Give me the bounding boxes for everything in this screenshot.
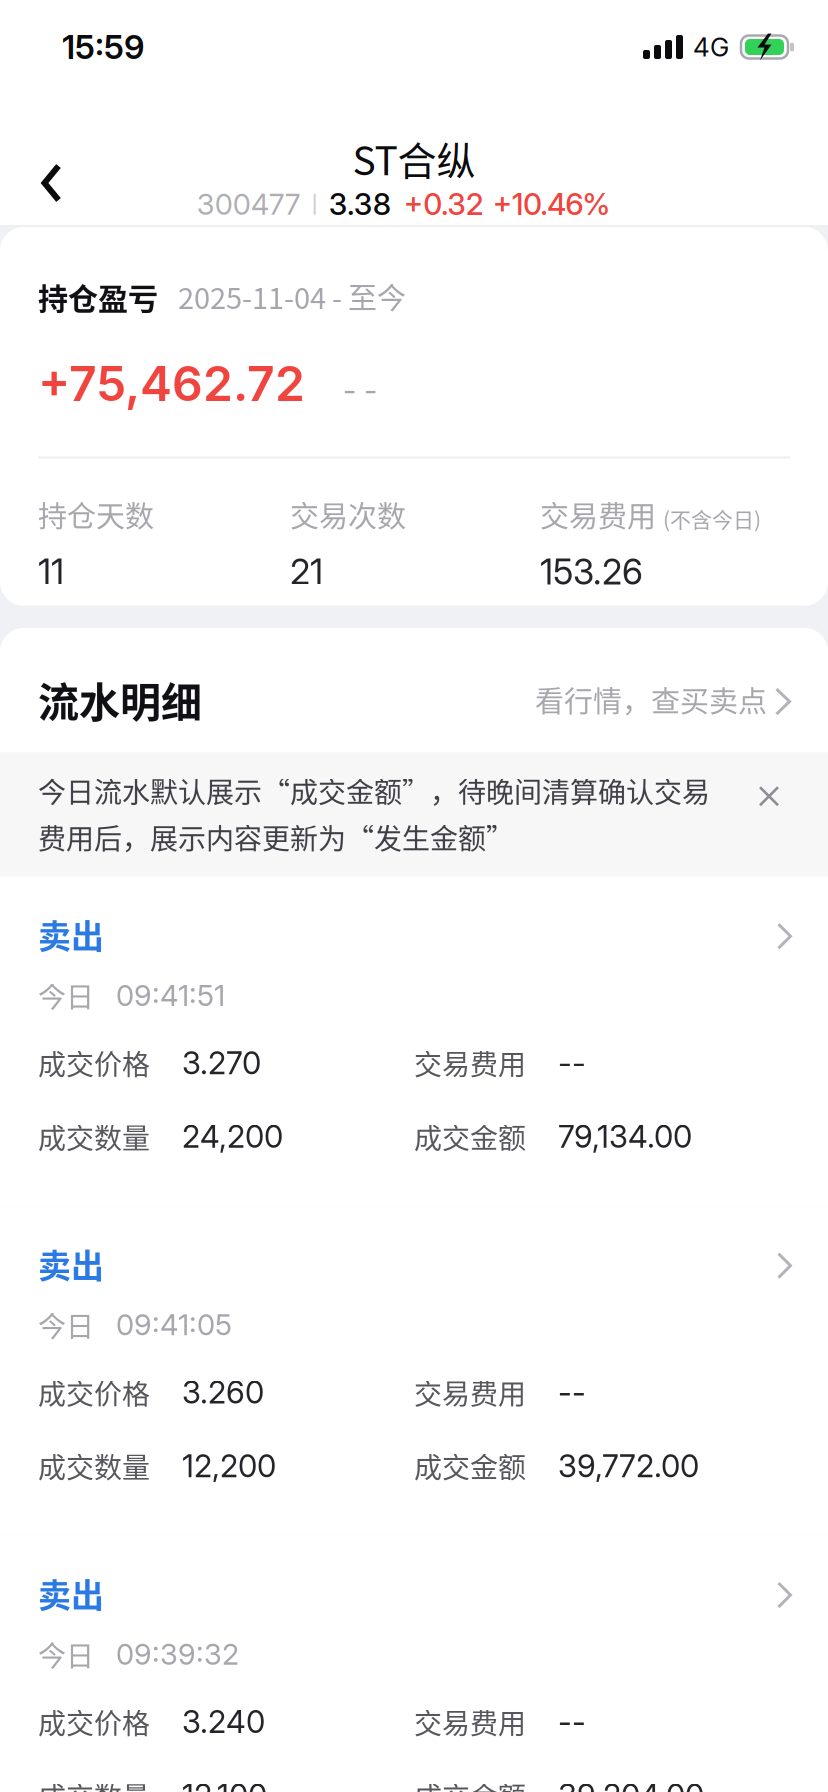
staticText: 卖出 bbox=[38, 1240, 104, 1287]
staticText: 300477 bbox=[197, 187, 301, 222]
staticText: 交易费用 bbox=[414, 1043, 526, 1083]
staticText: 今日 bbox=[38, 975, 94, 1016]
staticText: 成交数量 bbox=[38, 1775, 150, 1792]
staticText: 成交数量 bbox=[38, 1116, 150, 1157]
staticText: 4G bbox=[693, 31, 729, 63]
staticText: 3.38 bbox=[329, 186, 391, 222]
staticText: 持仓天数 bbox=[38, 493, 154, 535]
button[interactable]: 卖出 bbox=[0, 1535, 828, 1792]
staticText: 79,134.00 bbox=[558, 1118, 692, 1155]
button[interactable]: Close bbox=[736, 763, 802, 829]
staticText: 09:41:51 bbox=[116, 978, 225, 1013]
staticText: 09:39:32 bbox=[116, 1637, 239, 1672]
staticText: 39,204.00 bbox=[558, 1776, 704, 1792]
staticText: 成交价格 bbox=[38, 1043, 150, 1083]
staticText: 3.260 bbox=[182, 1374, 264, 1411]
staticText: +75,462.72 bbox=[38, 354, 305, 412]
staticText: 24,200 bbox=[182, 1118, 283, 1155]
staticText: 成交金额 bbox=[414, 1116, 526, 1157]
staticText: 今日流水默认展示“成交金额”，待晚间清算确认交易 bbox=[38, 770, 710, 811]
staticText: 卖出 bbox=[38, 1569, 104, 1617]
staticText: 09:41:05 bbox=[116, 1307, 232, 1342]
button[interactable]: Back bbox=[0, 94, 103, 225]
staticText: ST合纵 bbox=[352, 130, 475, 186]
staticText: 看行情，查买卖点 bbox=[535, 678, 767, 720]
staticText: 成交金额 bbox=[414, 1446, 526, 1486]
staticText: -- bbox=[558, 1374, 586, 1411]
staticText: 流水明细 bbox=[38, 670, 202, 729]
staticText: 交易费用 bbox=[414, 1701, 526, 1742]
staticText: 成交价格 bbox=[38, 1372, 150, 1413]
staticText: 153.26 bbox=[540, 550, 643, 593]
staticText: 交易费用 bbox=[414, 1372, 526, 1413]
staticText: -- bbox=[558, 1044, 586, 1082]
staticText: 3.240 bbox=[182, 1703, 265, 1740]
staticText: 12,200 bbox=[182, 1447, 276, 1485]
staticText: - - bbox=[343, 372, 377, 408]
staticText: 39,772.00 bbox=[558, 1447, 699, 1485]
staticText: 交易费用 bbox=[540, 493, 656, 535]
staticText: 21 bbox=[290, 550, 323, 593]
staticText: 成交数量 bbox=[38, 1446, 150, 1486]
staticText: 2025-11-04 - 至今 bbox=[178, 275, 406, 317]
staticText: 今日 bbox=[38, 1634, 94, 1674]
staticText: 费用后，展示内容更新为“发生金额” bbox=[38, 817, 514, 857]
button[interactable]: 卖出 bbox=[0, 876, 828, 1206]
staticText: 3.270 bbox=[182, 1044, 261, 1082]
staticText: +10.46% bbox=[493, 186, 610, 222]
staticText: 成交金额 bbox=[414, 1775, 526, 1792]
staticText: +0.32 bbox=[404, 186, 484, 222]
staticText: 交易次数 bbox=[290, 493, 406, 535]
staticText: (不含今日) bbox=[663, 503, 761, 533]
staticText: -- bbox=[558, 1703, 586, 1740]
staticText: 今日 bbox=[38, 1304, 94, 1345]
staticText: 成交价格 bbox=[38, 1701, 150, 1742]
button[interactable]: 看行情，查买卖点 bbox=[535, 678, 791, 720]
staticText: 11 bbox=[38, 550, 64, 593]
button[interactable]: 卖出 bbox=[0, 1206, 828, 1535]
staticText: 15:59 bbox=[62, 27, 144, 67]
staticText: 卖出 bbox=[38, 910, 104, 958]
staticText: 12,100 bbox=[182, 1776, 267, 1792]
staticText: 持仓盈亏 bbox=[38, 275, 158, 318]
